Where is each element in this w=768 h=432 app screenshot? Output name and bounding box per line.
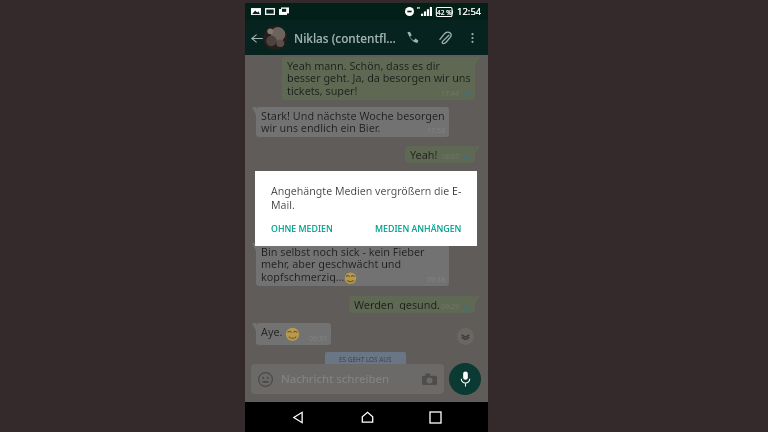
- other: Camera: [422, 373, 437, 386]
- staticText: Werden gesund.: [354, 297, 440, 310]
- staticText: Bin selbst noch sick - kein Fieber mehr,…: [261, 244, 425, 283]
- staticText: OHNE MEDIEN: [271, 223, 333, 235]
- button[interactable]: Back: [283, 402, 313, 432]
- button[interactable]: Emoji: [251, 364, 444, 394]
- staticText: 18:07: [441, 152, 459, 162]
- button[interactable]: Back: [246, 27, 268, 49]
- button[interactable]: Scroll to bottom: [457, 328, 474, 345]
- staticText: Mail.: [271, 198, 295, 212]
- staticText: ": [417, 5, 420, 15]
- staticText: Niklas (contentfl…: [294, 30, 396, 46]
- staticText: 09:29: [441, 302, 459, 312]
- button[interactable]: Call: [401, 26, 424, 49]
- button[interactable]: Home: [352, 402, 382, 432]
- staticText: Angehängte Medien vergrößern die E-: [271, 184, 462, 198]
- button[interactable]: Yeah!: [405, 146, 475, 163]
- other: Emoji: [258, 372, 273, 387]
- staticText: 17:53: [427, 126, 445, 136]
- staticText: Yeah!: [410, 147, 438, 160]
- staticText: ES GEHT LOS AUS: [339, 355, 392, 364]
- staticText: 42 %: [437, 8, 452, 17]
- staticText: Stark! Und nächste Woche besorgen wir un…: [261, 108, 445, 134]
- button[interactable]: OHNE MEDIEN: [269, 221, 335, 237]
- button[interactable]: MEDIEN ANHÄNGEN: [373, 221, 464, 237]
- staticText: Aye.: [261, 324, 283, 339]
- button[interactable]: Recents: [420, 402, 450, 432]
- staticText: 12:54: [457, 5, 482, 18]
- button[interactable]: Yeah mann. Schön, dass es dir besser geh…: [282, 57, 475, 100]
- button[interactable]: More options: [463, 28, 482, 47]
- button[interactable]: Bin selbst noch sick - kein Fieber mehr,…: [256, 243, 449, 286]
- staticText: Nachricht schreiben: [281, 371, 390, 387]
- staticText: Yeah mann. Schön, dass es dir besser geh…: [287, 58, 471, 97]
- staticText: MEDIEN ANHÄNGEN: [375, 223, 462, 235]
- button[interactable]: Stark! Und nächste Woche besorgen wir un…: [256, 107, 449, 137]
- button[interactable]: Attach: [433, 26, 457, 50]
- button[interactable]: Record voice message: [449, 363, 481, 395]
- button[interactable]: Werden gesund.: [349, 296, 475, 313]
- button[interactable]: Aye.: [256, 323, 331, 345]
- staticText: 09:31: [309, 334, 327, 344]
- staticText: 17:44: [441, 89, 459, 99]
- staticText: 09:18: [427, 275, 445, 285]
